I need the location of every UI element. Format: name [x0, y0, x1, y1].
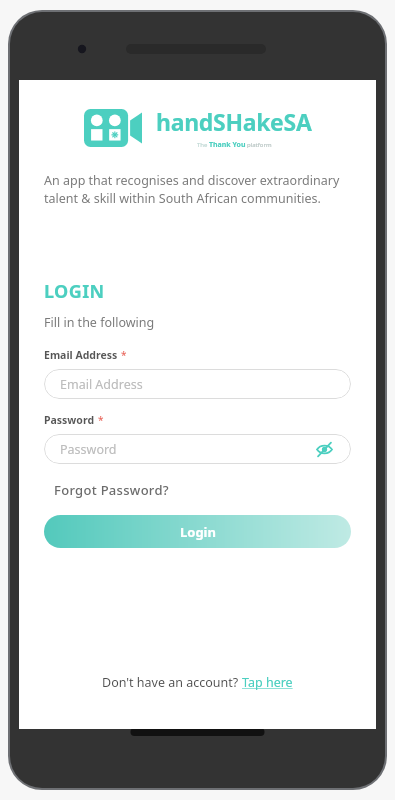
staticText: An app that recognises and discover extr… [44, 172, 351, 207]
staticText: Email Address [60, 376, 143, 393]
staticText: The Thank You platform [197, 140, 272, 150]
staticText: Forgot Password? [54, 481, 169, 499]
button[interactable]: Show password [313, 438, 335, 460]
staticText: LOGIN [44, 279, 105, 304]
staticText: handSHakeSA [156, 106, 312, 137]
staticText: * [121, 348, 127, 362]
staticText: Fill in the following [44, 314, 155, 331]
button[interactable]: Tap here [242, 674, 293, 691]
button[interactable]: Login [44, 515, 351, 548]
staticText: Don't have an account? [102, 674, 242, 691]
staticText: Login [180, 523, 216, 541]
staticText: Password [44, 413, 95, 427]
staticText: * [98, 413, 104, 427]
staticText: Email Address [44, 348, 118, 362]
button[interactable]: Forgot Password? [54, 479, 169, 501]
staticText: Tap here [242, 674, 293, 691]
staticText: Password [60, 441, 117, 458]
button[interactable]: Password [44, 434, 351, 464]
button[interactable]: Email Address [44, 369, 351, 399]
